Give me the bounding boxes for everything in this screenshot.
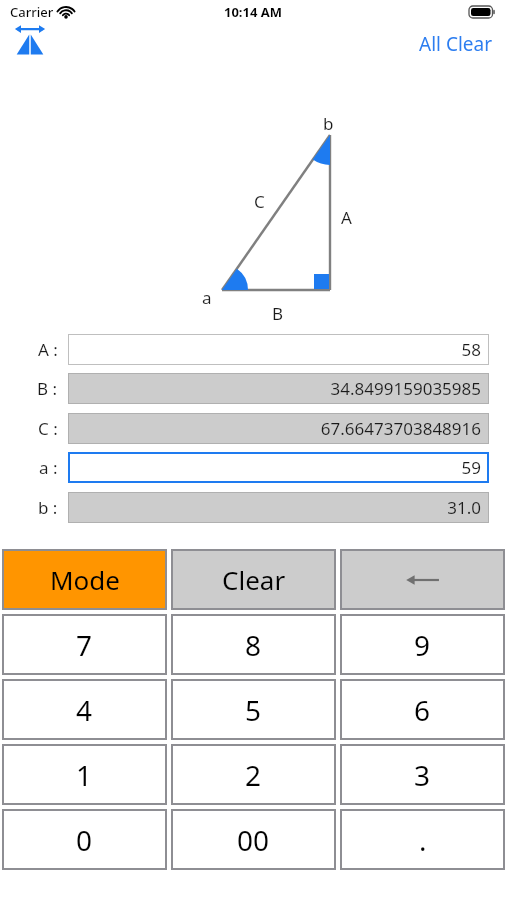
staticText: 31.0: [447, 496, 481, 519]
staticText: B :: [37, 377, 58, 400]
staticText: All Clear: [419, 31, 493, 57]
button[interactable]: .: [340, 809, 505, 870]
staticText: C :: [38, 417, 58, 440]
staticText: 9: [414, 626, 431, 664]
staticText: 34.8499159035985: [330, 377, 481, 400]
staticText: A :: [38, 338, 58, 361]
button[interactable]: Mode: [2, 549, 167, 610]
button[interactable]: 2: [171, 744, 336, 805]
staticText: 10:14 AM: [224, 3, 283, 21]
staticText: b: [323, 112, 334, 135]
button[interactable]: Clear: [171, 549, 336, 610]
staticText: 67.66473703848916: [320, 417, 481, 440]
staticText: 4: [76, 691, 93, 729]
staticText: 00: [237, 821, 270, 859]
button[interactable]: 4: [2, 679, 167, 740]
button[interactable]: 1: [2, 744, 167, 805]
staticText: A: [341, 206, 352, 229]
staticText: 2: [245, 756, 262, 794]
staticText: .: [419, 821, 427, 859]
staticText: a :: [39, 456, 58, 479]
staticText: Mode: [50, 562, 120, 597]
button[interactable]: 5: [171, 679, 336, 740]
button[interactable]: Flip triangle: [12, 24, 52, 60]
staticText: 7: [76, 626, 93, 664]
button[interactable]: 59: [68, 452, 489, 483]
button[interactable]: 00: [171, 809, 336, 870]
button[interactable]: 34.8499159035985: [68, 373, 489, 404]
staticText: 58: [461, 338, 481, 361]
staticText: 0: [76, 821, 93, 859]
staticText: B: [272, 302, 284, 325]
button[interactable]: 58: [68, 334, 489, 365]
staticText: b :: [38, 496, 58, 519]
button[interactable]: 0: [2, 809, 167, 870]
button[interactable]: 6: [340, 679, 505, 740]
button[interactable]: 67.66473703848916: [68, 413, 489, 444]
button[interactable]: 3: [340, 744, 505, 805]
button[interactable]: 9: [340, 614, 505, 675]
staticText: 6: [414, 691, 431, 729]
button[interactable]: 31.0: [68, 492, 489, 523]
staticText: C: [254, 190, 265, 213]
staticText: a: [202, 286, 212, 309]
button[interactable]: 7: [2, 614, 167, 675]
staticText: 59: [461, 456, 481, 479]
staticText: Clear: [222, 562, 286, 597]
button[interactable]: All Clear: [419, 31, 493, 57]
staticText: Carrier: [10, 3, 54, 21]
staticText: 3: [414, 756, 431, 794]
staticText: 5: [245, 691, 262, 729]
button[interactable]: Backspace: [340, 549, 505, 610]
staticText: 1: [76, 756, 93, 794]
button[interactable]: 8: [171, 614, 336, 675]
staticText: 8: [245, 626, 262, 664]
